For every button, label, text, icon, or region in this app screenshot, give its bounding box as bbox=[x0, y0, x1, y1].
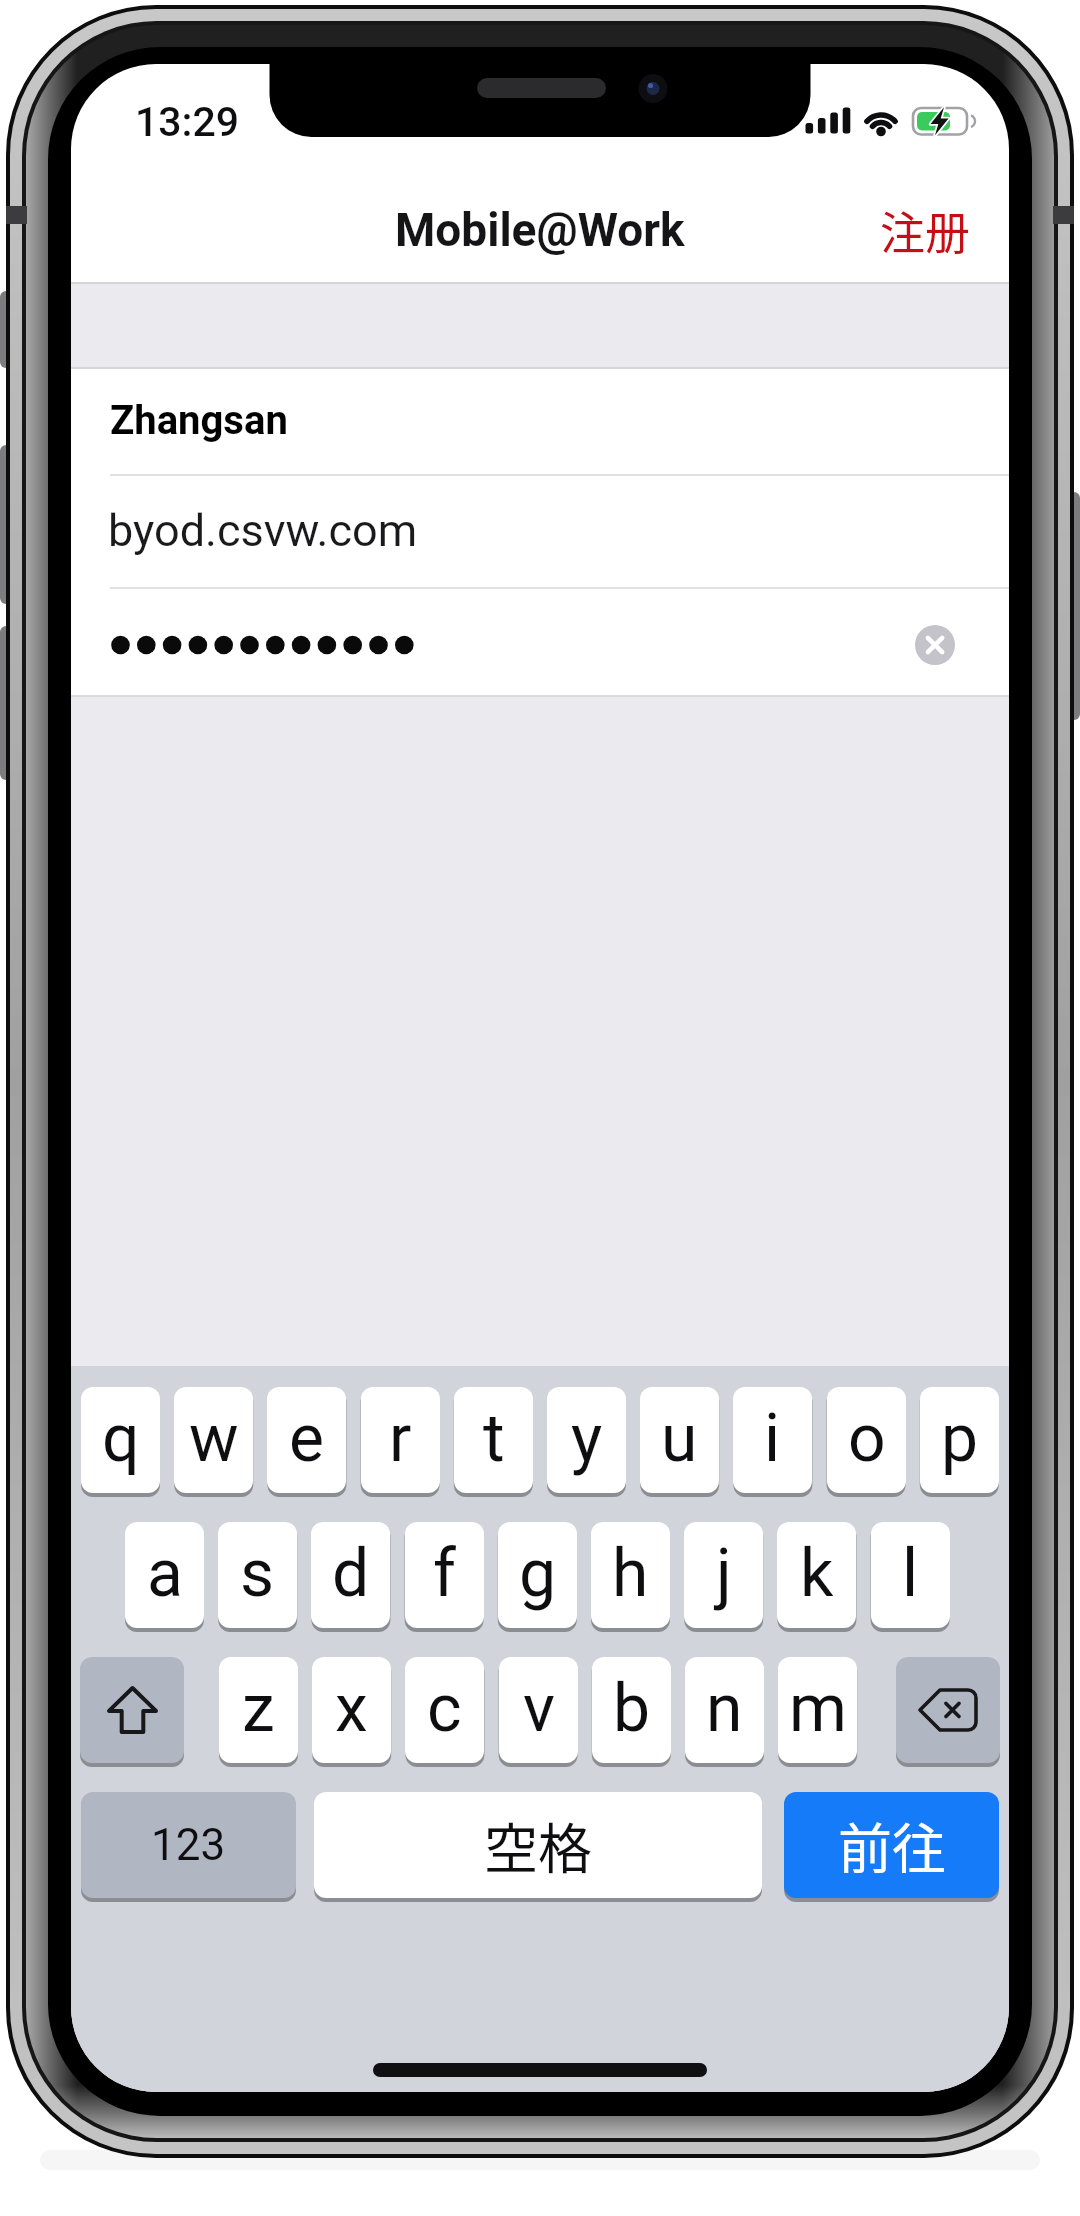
button[interactable]: c bbox=[405, 1657, 484, 1763]
button[interactable]: m bbox=[778, 1657, 857, 1763]
staticText: n bbox=[706, 1670, 743, 1747]
button[interactable]: byod.csvw.com bbox=[71, 476, 1009, 589]
button[interactable]: k bbox=[777, 1522, 856, 1628]
staticText: u bbox=[661, 1400, 698, 1477]
staticText: p bbox=[941, 1400, 979, 1477]
button[interactable]: g bbox=[498, 1522, 577, 1628]
staticText: 123 bbox=[151, 1819, 226, 1871]
button[interactable]: 123 bbox=[81, 1792, 296, 1898]
staticText: z bbox=[242, 1670, 275, 1747]
button[interactable]: l bbox=[871, 1522, 950, 1628]
staticText: x bbox=[335, 1670, 368, 1747]
button[interactable]: o bbox=[827, 1387, 906, 1493]
button[interactable] bbox=[80, 1657, 184, 1763]
button[interactable]: Zhangsan bbox=[71, 369, 1009, 476]
button[interactable]: y bbox=[547, 1387, 626, 1493]
button[interactable]: u bbox=[640, 1387, 719, 1493]
button[interactable]: f bbox=[405, 1522, 484, 1628]
button[interactable]: z bbox=[219, 1657, 298, 1763]
button[interactable]: s bbox=[218, 1522, 297, 1628]
staticText: w bbox=[189, 1400, 239, 1477]
staticText: c bbox=[427, 1670, 462, 1747]
staticText: f bbox=[433, 1535, 456, 1612]
button[interactable]: d bbox=[311, 1522, 390, 1628]
button[interactable]: t bbox=[454, 1387, 533, 1493]
staticText: t bbox=[483, 1400, 505, 1477]
staticText: a bbox=[147, 1535, 183, 1612]
staticText: q bbox=[102, 1400, 140, 1477]
button[interactable]: 注册 bbox=[860, 196, 990, 264]
button[interactable]: r bbox=[361, 1387, 440, 1493]
button[interactable]: 空格 bbox=[314, 1792, 762, 1898]
staticText: 空格 bbox=[484, 1806, 592, 1884]
button[interactable]: 前往 bbox=[784, 1792, 999, 1898]
button[interactable]: i bbox=[733, 1387, 812, 1493]
staticText: j bbox=[716, 1535, 732, 1612]
button[interactable] bbox=[71, 589, 1009, 695]
staticText: o bbox=[848, 1400, 886, 1477]
staticText: r bbox=[389, 1400, 412, 1477]
staticText: Zhangsan bbox=[110, 397, 288, 444]
staticText: l bbox=[902, 1535, 919, 1612]
staticText: k bbox=[800, 1535, 834, 1612]
staticText: v bbox=[523, 1670, 555, 1747]
button[interactable]: b bbox=[592, 1657, 671, 1763]
staticText: b bbox=[613, 1670, 651, 1747]
staticText: 13:29 bbox=[135, 98, 240, 146]
staticText: d bbox=[332, 1535, 370, 1612]
button[interactable]: n bbox=[685, 1657, 764, 1763]
staticText: e bbox=[289, 1400, 324, 1477]
staticText: 前往 bbox=[838, 1806, 946, 1884]
button[interactable]: e bbox=[267, 1387, 346, 1493]
staticText: h bbox=[612, 1535, 649, 1612]
staticText: m bbox=[789, 1670, 847, 1747]
button[interactable]: p bbox=[920, 1387, 999, 1493]
staticText: Mobile@Work bbox=[395, 203, 685, 257]
button[interactable]: a bbox=[125, 1522, 204, 1628]
button[interactable]: w bbox=[174, 1387, 253, 1493]
staticText: i bbox=[764, 1400, 781, 1477]
staticText: y bbox=[571, 1400, 603, 1477]
button[interactable]: q bbox=[81, 1387, 160, 1493]
staticText: s bbox=[240, 1535, 275, 1612]
staticText: g bbox=[519, 1535, 557, 1612]
button[interactable] bbox=[896, 1657, 1000, 1763]
button[interactable]: h bbox=[591, 1522, 670, 1628]
button[interactable]: j bbox=[684, 1522, 763, 1628]
button[interactable]: v bbox=[499, 1657, 578, 1763]
button[interactable]: x bbox=[312, 1657, 391, 1763]
staticText: 注册 bbox=[880, 198, 971, 263]
staticText: byod.csvw.com bbox=[108, 504, 418, 557]
